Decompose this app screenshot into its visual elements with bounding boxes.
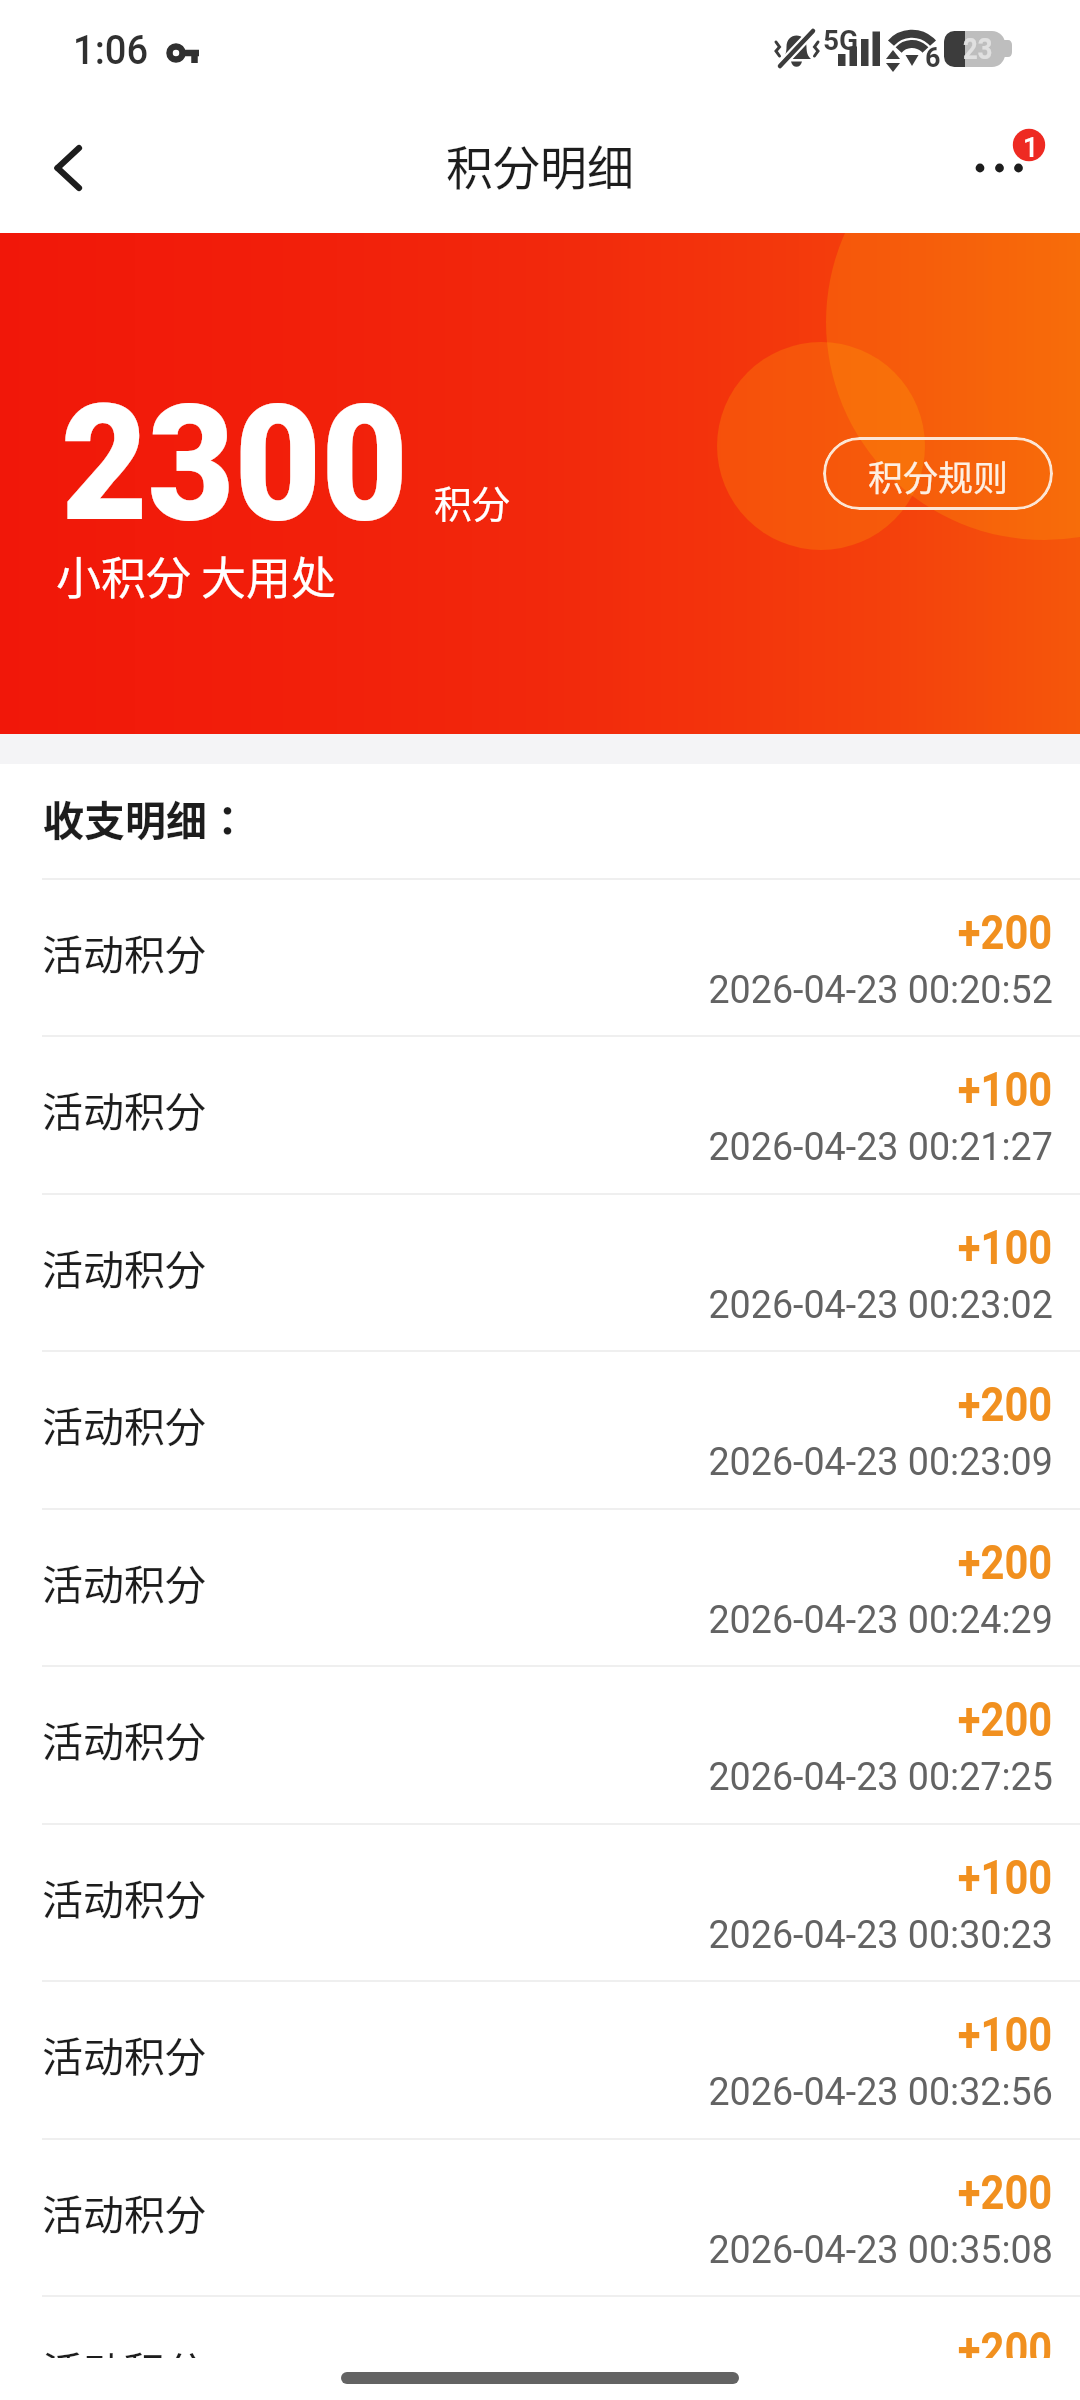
button[interactable]: 活动积分 bbox=[0, 1825, 1080, 1981]
staticText: 2026-04-23 00:35:08 bbox=[708, 2228, 1053, 2273]
button[interactable]: 活动积分 bbox=[0, 1037, 1080, 1193]
staticText: 活动积分 bbox=[42, 1709, 206, 1768]
staticText: 1 bbox=[1023, 132, 1039, 164]
staticText: 活动积分 bbox=[42, 2182, 206, 2241]
staticText: +200 bbox=[958, 1376, 1053, 1433]
staticText: 活动积分 bbox=[42, 1237, 206, 1296]
button[interactable]: 活动积分 bbox=[0, 880, 1080, 1036]
staticText: +200 bbox=[958, 1534, 1053, 1591]
staticText: 1:06 bbox=[73, 26, 148, 74]
staticText: 活动积分 bbox=[42, 1867, 206, 1926]
staticText: +100 bbox=[958, 1849, 1053, 1906]
staticText: +200 bbox=[958, 2321, 1053, 2378]
button[interactable]: 活动积分 bbox=[0, 2297, 1080, 2400]
staticText: 2026-04-23 00:32:56 bbox=[708, 2070, 1053, 2115]
staticText: 收支明细： bbox=[43, 788, 248, 847]
staticText: +200 bbox=[958, 1691, 1053, 1748]
staticText: 积分明细 bbox=[446, 130, 634, 198]
staticText: 2026-04-23 00:20:52 bbox=[708, 968, 1053, 1013]
button[interactable]: 积分规则 bbox=[823, 437, 1053, 510]
staticText: 活动积分 bbox=[42, 1079, 206, 1138]
staticText: +100 bbox=[958, 1061, 1053, 1118]
staticText: 2026-04-23 00:30:23 bbox=[708, 1913, 1053, 1958]
staticText: 2026-04-23 00:27:25 bbox=[708, 1755, 1053, 1800]
staticText: 2026-04-23 00:23:02 bbox=[708, 1283, 1053, 1328]
button[interactable]: 活动积分 bbox=[0, 1667, 1080, 1823]
button[interactable]: Back bbox=[0, 110, 118, 233]
staticText: 积分规则 bbox=[868, 450, 1009, 501]
staticText: 6 bbox=[925, 42, 941, 74]
button[interactable]: 活动积分 bbox=[0, 2140, 1080, 2296]
staticText: 活动积分 bbox=[42, 1552, 206, 1611]
staticText: 23 bbox=[963, 32, 993, 66]
staticText: +100 bbox=[958, 1219, 1053, 1276]
staticText: 2300 bbox=[61, 370, 409, 559]
staticText: +100 bbox=[958, 2006, 1053, 2063]
staticText: 小积分 大用处 bbox=[56, 543, 337, 608]
button[interactable]: 活动积分 bbox=[0, 1195, 1080, 1351]
staticText: 2026-04-23 00:24:29 bbox=[708, 1598, 1053, 1643]
staticText: 活动积分 bbox=[42, 2339, 206, 2398]
button[interactable]: 活动积分 bbox=[0, 1982, 1080, 2138]
button[interactable]: 活动积分 bbox=[0, 1510, 1080, 1666]
staticText: 积分 bbox=[434, 474, 511, 529]
staticText: 活动积分 bbox=[42, 922, 206, 981]
staticText: 活动积分 bbox=[42, 1394, 206, 1453]
button[interactable]: 活动积分 bbox=[0, 1352, 1080, 1508]
staticText: 5G bbox=[823, 24, 859, 57]
button[interactable]: More options bbox=[950, 110, 1080, 233]
staticText: 活动积分 bbox=[42, 2024, 206, 2083]
staticText: +200 bbox=[958, 904, 1053, 961]
staticText: +200 bbox=[958, 2164, 1053, 2221]
staticText: 2026-04-23 00:23:09 bbox=[708, 1440, 1053, 1485]
staticText: 2026-04-23 00:21:27 bbox=[708, 1125, 1053, 1170]
